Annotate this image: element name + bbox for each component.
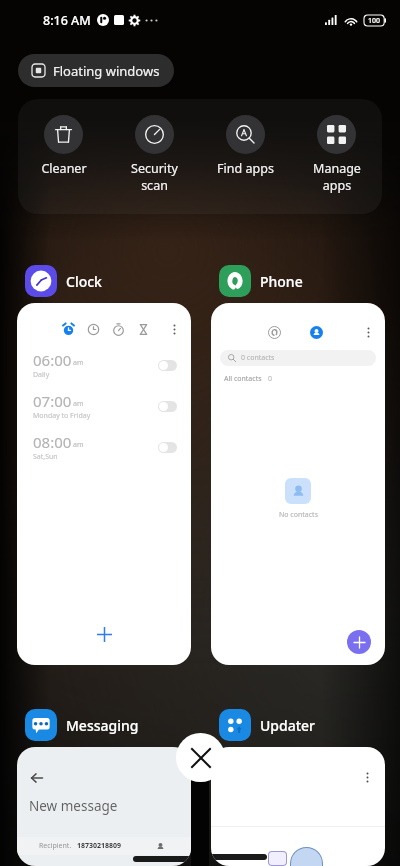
- button[interactable]: 0 contacts: [220, 350, 376, 366]
- staticText: 0: [268, 374, 273, 384]
- staticText: All contacts: [224, 374, 262, 384]
- button[interactable]: Cleaner: [18, 115, 109, 177]
- staticText: Find apps: [217, 160, 274, 177]
- staticText: Security scan: [131, 160, 178, 193]
- button[interactable]: 07:00: [33, 391, 177, 421]
- staticText: No contacts: [279, 510, 318, 520]
- button[interactable]: 06:00: [33, 350, 177, 380]
- staticText: Manage apps: [313, 160, 361, 193]
- staticText: Sat,Sun: [33, 452, 58, 462]
- button[interactable]: Contacts: [310, 326, 323, 339]
- button[interactable]: Find apps: [200, 115, 291, 177]
- button[interactable]: Back: [17, 747, 191, 866]
- staticText: Phone: [260, 272, 303, 291]
- button[interactable]: 08:00: [33, 432, 177, 462]
- staticText: Monday to Friday: [33, 411, 91, 421]
- staticText: 07:00: [33, 391, 72, 411]
- staticText: 0 contacts: [241, 353, 275, 363]
- staticText: am: [73, 399, 84, 409]
- staticText: Floating windows: [53, 62, 160, 80]
- staticText: Messaging: [66, 716, 139, 735]
- staticText: Clock: [66, 272, 102, 291]
- staticText: 18730218809: [77, 841, 122, 851]
- button[interactable]: Recents: [211, 303, 385, 665]
- staticText: am: [73, 440, 84, 450]
- button[interactable]: Toggle alarm: [158, 401, 177, 412]
- button[interactable]: Add alarm: [89, 619, 119, 649]
- button[interactable]: More options: [359, 769, 375, 785]
- staticText: 06:00: [33, 350, 72, 370]
- staticText: Daily: [33, 370, 50, 380]
- button[interactable]: Floating windows: [18, 54, 174, 87]
- button[interactable]: Manage apps: [291, 115, 382, 193]
- staticText: 8:16 AM: [43, 12, 91, 29]
- button[interactable]: More options: [211, 747, 385, 866]
- staticText: 08:00: [33, 432, 72, 452]
- button[interactable]: Close all: [176, 733, 225, 782]
- button[interactable]: Security scan: [109, 115, 200, 193]
- button[interactable]: Toggle alarm: [158, 442, 177, 453]
- staticText: 100: [368, 16, 381, 26]
- button[interactable]: Toggle alarm: [158, 360, 177, 371]
- staticText: Recipient.: [39, 841, 72, 851]
- button[interactable]: Back: [28, 769, 46, 787]
- button[interactable]: Recipient.: [39, 837, 179, 855]
- staticText: Cleaner: [41, 160, 87, 177]
- button[interactable]: 06:00: [17, 303, 191, 665]
- button[interactable]: Recents: [265, 323, 284, 342]
- staticText: New message: [29, 797, 118, 815]
- staticText: am: [73, 358, 84, 368]
- staticText: Updater: [260, 716, 316, 735]
- button[interactable]: Add contact: [347, 630, 371, 654]
